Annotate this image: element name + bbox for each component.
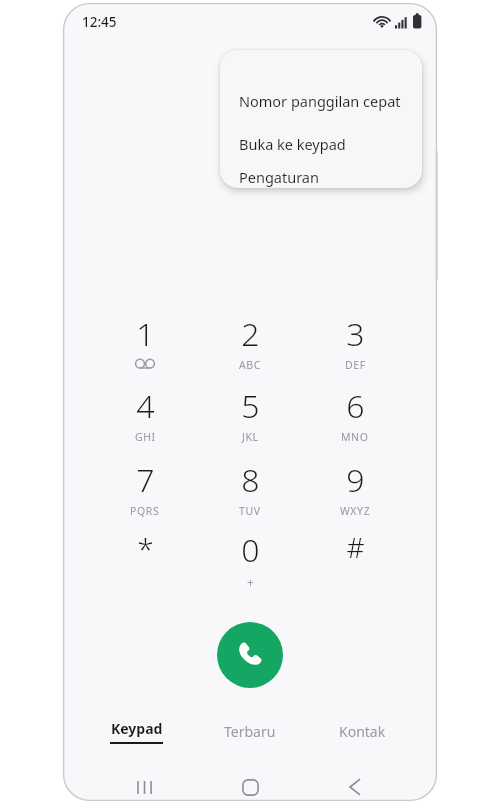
button[interactable]: 7 [99, 458, 191, 526]
button[interactable]: # [309, 528, 401, 596]
staticText: JKL [242, 430, 259, 444]
staticText: # [346, 528, 365, 566]
button[interactable]: 2 [204, 312, 296, 380]
staticText: PQRS [130, 504, 160, 518]
button[interactable]: 3 [309, 312, 401, 380]
staticText: Nomor panggilan cepat [239, 91, 401, 111]
button[interactable]: 0 [204, 528, 296, 596]
button[interactable]: Terbaru [195, 712, 305, 750]
button[interactable]: Keypad [81, 712, 191, 750]
button[interactable]: Nomor panggilan cepat [220, 50, 422, 122]
staticText: Terbaru [224, 722, 276, 741]
staticText: Kontak [339, 722, 386, 741]
staticText: 12:45 [82, 13, 117, 31]
button[interactable]: * [99, 528, 191, 596]
button[interactable]: Kontak [307, 712, 417, 750]
staticText: 2 [241, 312, 260, 356]
staticText: TUV [239, 504, 261, 518]
button[interactable]: 6 [309, 384, 401, 452]
staticText: MNO [341, 430, 369, 444]
button[interactable]: 9 [309, 458, 401, 526]
staticText: 9 [346, 458, 365, 502]
staticText: 8 [241, 458, 260, 502]
staticText: 3 [346, 312, 365, 356]
staticText: GHI [135, 430, 156, 444]
staticText: 4 [136, 384, 155, 428]
button[interactable]: 5 [204, 384, 296, 452]
staticText: 7 [136, 458, 155, 502]
staticText: Pengaturan [239, 167, 319, 187]
button[interactable]: Home [224, 761, 276, 801]
button[interactable]: Buka ke keypad [220, 122, 422, 165]
button[interactable]: 8 [204, 458, 296, 526]
staticText: Buka ke keypad [239, 134, 346, 154]
button[interactable]: 1 [99, 312, 191, 380]
staticText: ABC [239, 358, 261, 372]
button[interactable]: 4 [99, 384, 191, 452]
staticText: 5 [241, 384, 260, 428]
staticText: 0 [241, 528, 260, 572]
staticText: 1 [136, 312, 155, 356]
staticText: + [247, 574, 254, 590]
button[interactable]: Recents [119, 761, 171, 801]
staticText: 6 [346, 384, 365, 428]
button[interactable]: Back [329, 761, 381, 801]
staticText: WXYZ [340, 504, 371, 518]
button[interactable]: Pengaturan [220, 165, 422, 188]
staticText: * [137, 528, 154, 569]
button[interactable]: Call [217, 622, 283, 688]
staticText: Keypad [111, 719, 163, 738]
staticText: DEF [345, 358, 366, 372]
